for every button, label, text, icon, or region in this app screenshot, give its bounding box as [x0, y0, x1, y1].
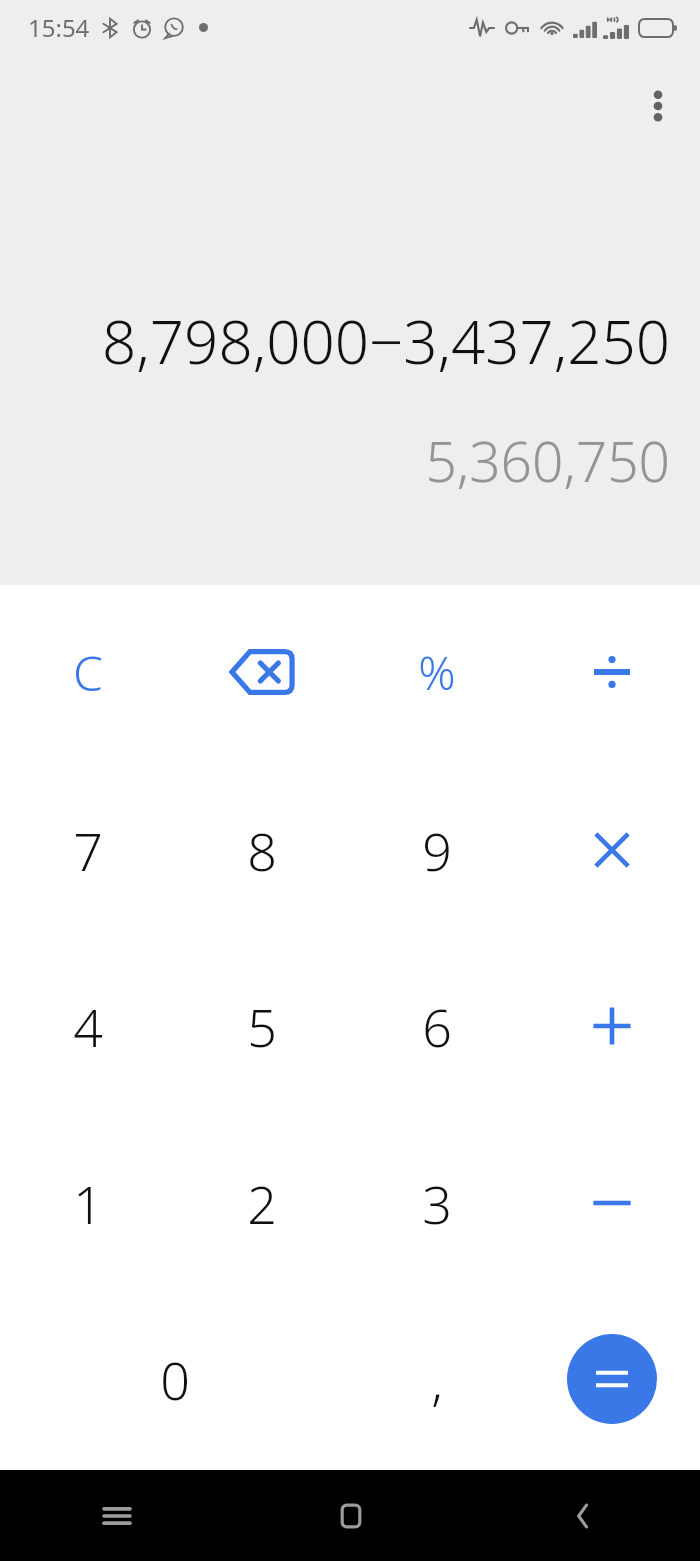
button[interactable]: Home	[234, 1470, 467, 1561]
button[interactable]: More options	[624, 72, 692, 140]
button[interactable]: 9	[357, 762, 517, 938]
button[interactable]: Minus	[532, 1115, 692, 1291]
staticText: ,	[431, 1344, 443, 1415]
button[interactable]: 8	[182, 762, 342, 938]
staticText: 5	[247, 991, 277, 1062]
button[interactable]: 0	[95, 1291, 255, 1467]
button[interactable]: Backspace	[182, 584, 342, 760]
staticText: 5,360,750	[18, 423, 670, 498]
button[interactable]: %	[357, 584, 517, 760]
button[interactable]: Plus	[532, 938, 692, 1114]
button[interactable]: 3	[357, 1115, 517, 1291]
button[interactable]: 5	[182, 938, 342, 1114]
staticText: 6	[422, 991, 452, 1062]
staticText: %	[418, 641, 456, 704]
staticText: 2	[247, 1168, 277, 1239]
button[interactable]: ,	[357, 1291, 517, 1467]
button[interactable]: 4	[8, 938, 168, 1114]
button[interactable]: 6	[357, 938, 517, 1114]
button[interactable]: 7	[8, 762, 168, 938]
button[interactable]: C	[8, 584, 168, 760]
button[interactable]: Multiply	[532, 762, 692, 938]
staticText: 1	[73, 1168, 103, 1239]
staticText: 0	[160, 1344, 190, 1415]
staticText: C	[73, 640, 103, 705]
staticText: 4	[73, 991, 103, 1062]
staticText: 15:54	[28, 11, 90, 44]
button[interactable]: Divide	[532, 584, 692, 760]
staticText: 3	[422, 1168, 452, 1239]
staticText: 7	[73, 815, 103, 886]
staticText: 8,798,000−3,437,250	[18, 300, 670, 382]
button[interactable]: Back	[467, 1470, 700, 1561]
button[interactable]: Equals	[567, 1334, 657, 1424]
button[interactable]: 2	[182, 1115, 342, 1291]
staticText: 8	[247, 815, 277, 886]
button[interactable]: 1	[8, 1115, 168, 1291]
button[interactable]: Recent apps	[0, 1470, 234, 1561]
staticText: 9	[422, 815, 452, 886]
